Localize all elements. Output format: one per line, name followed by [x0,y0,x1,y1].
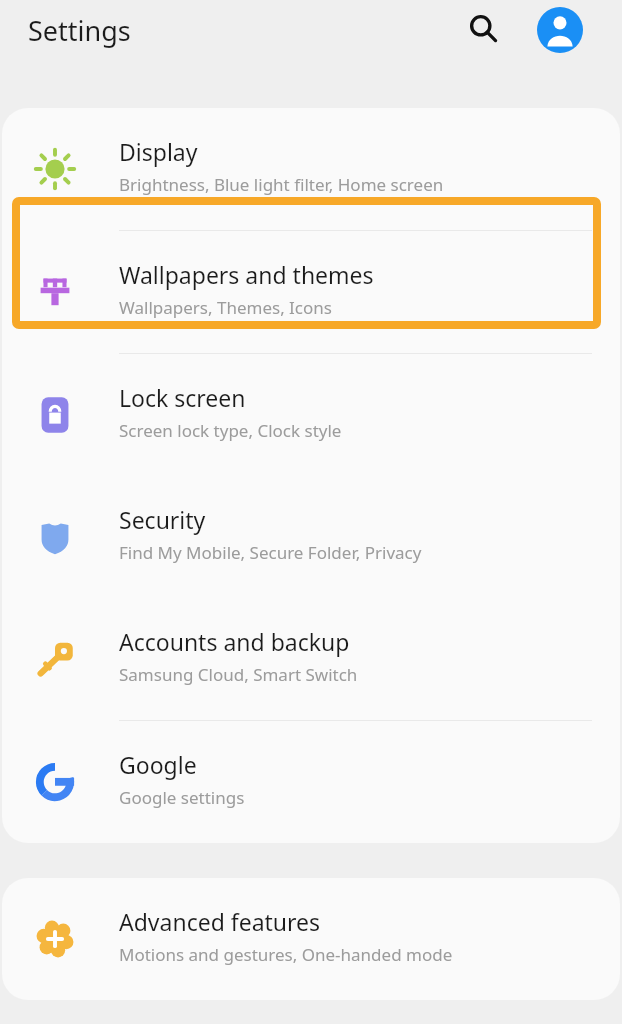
staticText: Lock screen [119,382,246,413]
button[interactable]: Accounts and backup [2,598,620,720]
staticText: Google [119,749,197,780]
staticText: Brightness, Blue light filter, Home scre… [119,173,444,196]
staticText: Wallpapers and themes [119,259,374,290]
staticText: Wallpapers, Themes, Icons [119,296,332,319]
staticText: Screen lock type, Clock style [119,419,342,442]
staticText: Settings [28,12,131,49]
staticText: Find My Mobile, Secure Folder, Privacy [119,541,422,564]
staticText: Accounts and backup [119,626,350,657]
button[interactable]: Account [532,2,588,58]
button[interactable]: Google [2,721,620,843]
staticText: Display [119,136,198,167]
button[interactable]: Advanced features [2,878,620,1000]
staticText: Samsung Cloud, Smart Switch [119,663,358,686]
staticText: Security [119,504,206,535]
button[interactable]: Wallpapers and themes [2,231,620,353]
staticText: Motions and gestures, One-handed mode [119,943,453,966]
staticText: Advanced features [119,906,321,937]
button[interactable]: Security [2,476,620,598]
button[interactable]: Display [2,108,620,230]
staticText: Google settings [119,786,245,809]
button[interactable]: Lock screen [2,354,620,476]
button[interactable]: Search [458,4,508,54]
